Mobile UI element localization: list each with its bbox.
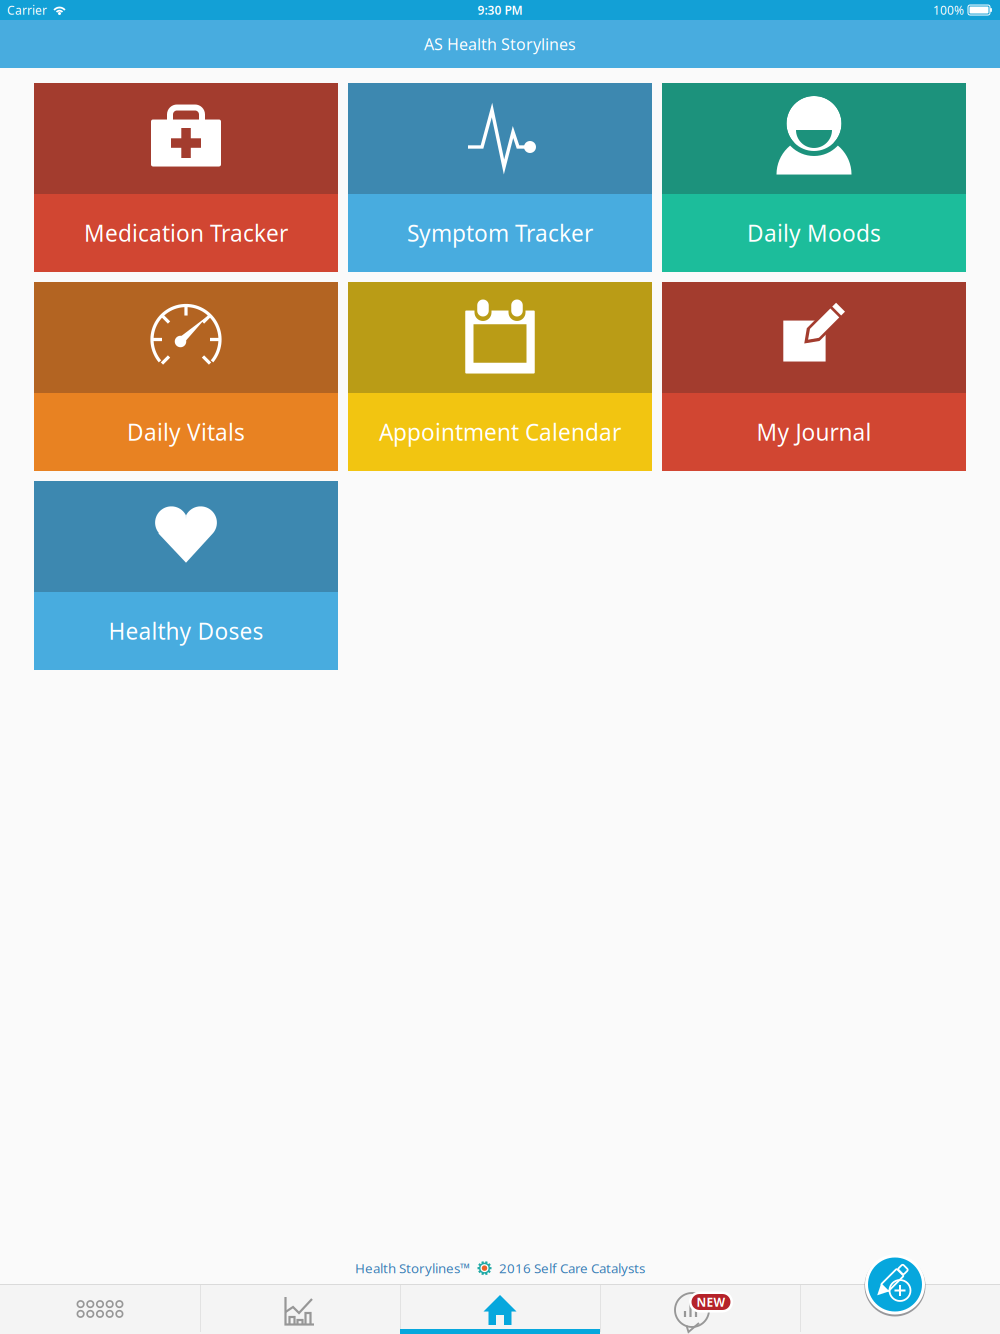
- button[interactable]: New entry: [863, 1252, 927, 1316]
- button[interactable]: Community: [600, 1284, 800, 1334]
- staticText: Health Storylines™: [355, 1259, 470, 1277]
- staticText: Carrier: [7, 2, 47, 18]
- button[interactable]: Symptom Tracker: [348, 83, 652, 272]
- staticText: Appointment Calendar: [379, 417, 621, 447]
- staticText: My Journal: [756, 417, 871, 447]
- button[interactable]: My Journal: [662, 282, 966, 471]
- staticText: NEW: [696, 1294, 725, 1310]
- button[interactable]: Daily Moods: [662, 83, 966, 272]
- staticText: Daily Vitals: [127, 417, 245, 447]
- staticText: Medication Tracker: [84, 218, 288, 248]
- button[interactable]: Add: [800, 1284, 1000, 1334]
- button[interactable]: Healthy Doses: [34, 481, 338, 670]
- staticText: Symptom Tracker: [407, 218, 593, 248]
- button[interactable]: Home: [400, 1284, 600, 1334]
- button[interactable]: Medication Tracker: [34, 83, 338, 272]
- button[interactable]: More: [0, 1284, 200, 1334]
- button[interactable]: Appointment Calendar: [348, 282, 652, 471]
- button[interactable]: Daily Vitals: [34, 282, 338, 471]
- staticText: 100%: [933, 2, 964, 18]
- staticText: 2016 Self Care Catalysts: [499, 1259, 645, 1277]
- staticText: Healthy Doses: [108, 616, 263, 646]
- button[interactable]: Charts: [200, 1284, 400, 1334]
- staticText: Daily Moods: [747, 218, 881, 248]
- staticText: AS Health Storylines: [424, 33, 576, 55]
- staticText: 9:30 PM: [477, 2, 522, 18]
